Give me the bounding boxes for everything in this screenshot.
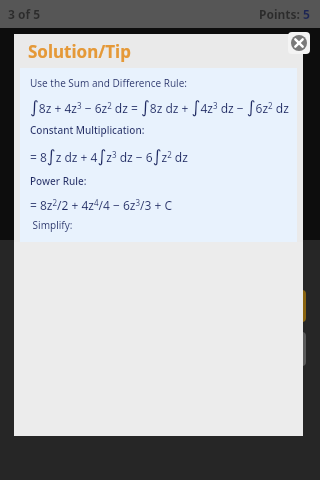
staticText: 3 of 5 [8,6,41,22]
staticText: Points: 5 [259,6,310,22]
button[interactable]: Next [14,332,306,366]
button[interactable]: Close [288,32,310,54]
staticText: = 8∫z dz + 4∫z3 dz − 6∫z2 dz [30,146,188,166]
button[interactable]: Solution/Tip [14,290,306,322]
staticText: Power Rule: [30,174,87,188]
staticText: ∫8z + 4z3 − 6z2 dz = ∫8z dz + ∫4z3 dz − … [30,97,289,117]
staticText: = 8z2/2 + 4z4/4 − 6z3/3 + C [30,197,173,213]
staticText: Constant Multiplication: [30,123,145,137]
staticText: Solution/Tip [28,40,131,63]
staticText: Simplify: [30,218,73,232]
staticText: Use the Sum and Difference Rule: [30,76,188,90]
